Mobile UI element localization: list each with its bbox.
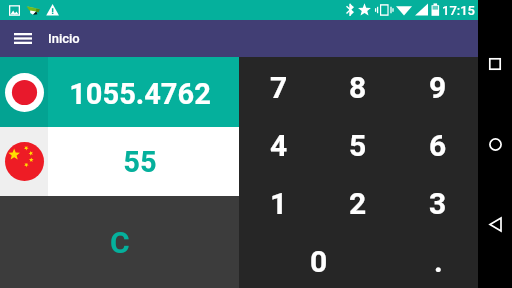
- staticText: 7: [270, 70, 288, 105]
- staticText: 55: [123, 145, 157, 179]
- staticText: .: [434, 244, 443, 279]
- staticText: Inicio: [48, 31, 80, 46]
- staticText: 1: [270, 186, 288, 221]
- staticText: C: [110, 225, 130, 260]
- staticText: 8: [349, 70, 367, 105]
- button[interactable]: 2: [318, 172, 398, 230]
- button[interactable]: 6: [398, 114, 478, 172]
- button[interactable]: 3: [398, 172, 478, 230]
- button[interactable]: 0: [239, 230, 398, 288]
- button[interactable]: 7: [239, 57, 318, 114]
- button[interactable]: 5: [318, 114, 398, 172]
- staticText: 3: [429, 186, 447, 221]
- button[interactable]: Home: [478, 126, 512, 162]
- staticText: 5: [349, 128, 367, 163]
- staticText: 9: [429, 70, 447, 105]
- staticText: 4: [270, 128, 288, 163]
- button[interactable]: Open navigation menu: [0, 20, 45, 57]
- staticText: 2: [349, 186, 367, 221]
- button[interactable]: .: [398, 230, 478, 288]
- staticText: 1055.4762: [69, 77, 211, 111]
- button[interactable]: 55: [0, 127, 239, 196]
- button[interactable]: 1055.4762: [0, 57, 239, 127]
- staticText: 0: [310, 244, 328, 279]
- staticText: 6: [429, 128, 447, 163]
- staticText: 17:15: [442, 3, 476, 18]
- button[interactable]: 9: [398, 57, 478, 114]
- button[interactable]: 8: [318, 57, 398, 114]
- button[interactable]: 1: [239, 172, 318, 230]
- button[interactable]: Back: [478, 206, 512, 242]
- button[interactable]: Recent apps: [478, 46, 512, 82]
- button[interactable]: 4: [239, 114, 318, 172]
- button[interactable]: C: [0, 196, 239, 288]
